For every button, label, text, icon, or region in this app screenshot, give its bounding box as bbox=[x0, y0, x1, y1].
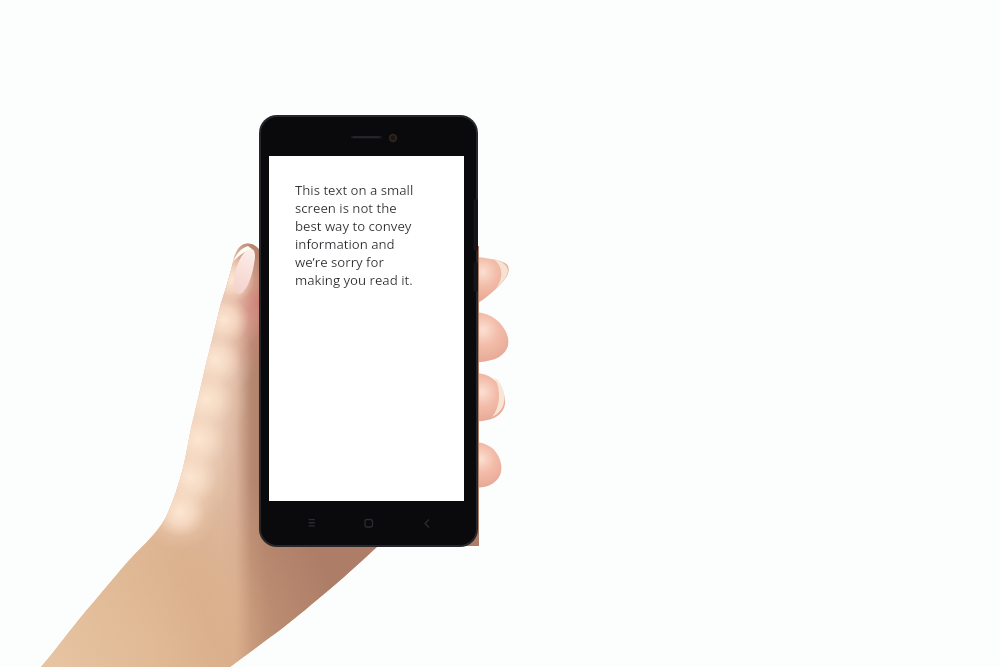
button[interactable]: Home bbox=[352, 514, 384, 536]
staticText: This text on a small screen is not the b… bbox=[295, 181, 417, 289]
button[interactable]: Recents bbox=[288, 514, 320, 536]
button[interactable]: This text on a small screen is not the b… bbox=[269, 156, 464, 501]
button[interactable]: Back bbox=[418, 514, 450, 536]
